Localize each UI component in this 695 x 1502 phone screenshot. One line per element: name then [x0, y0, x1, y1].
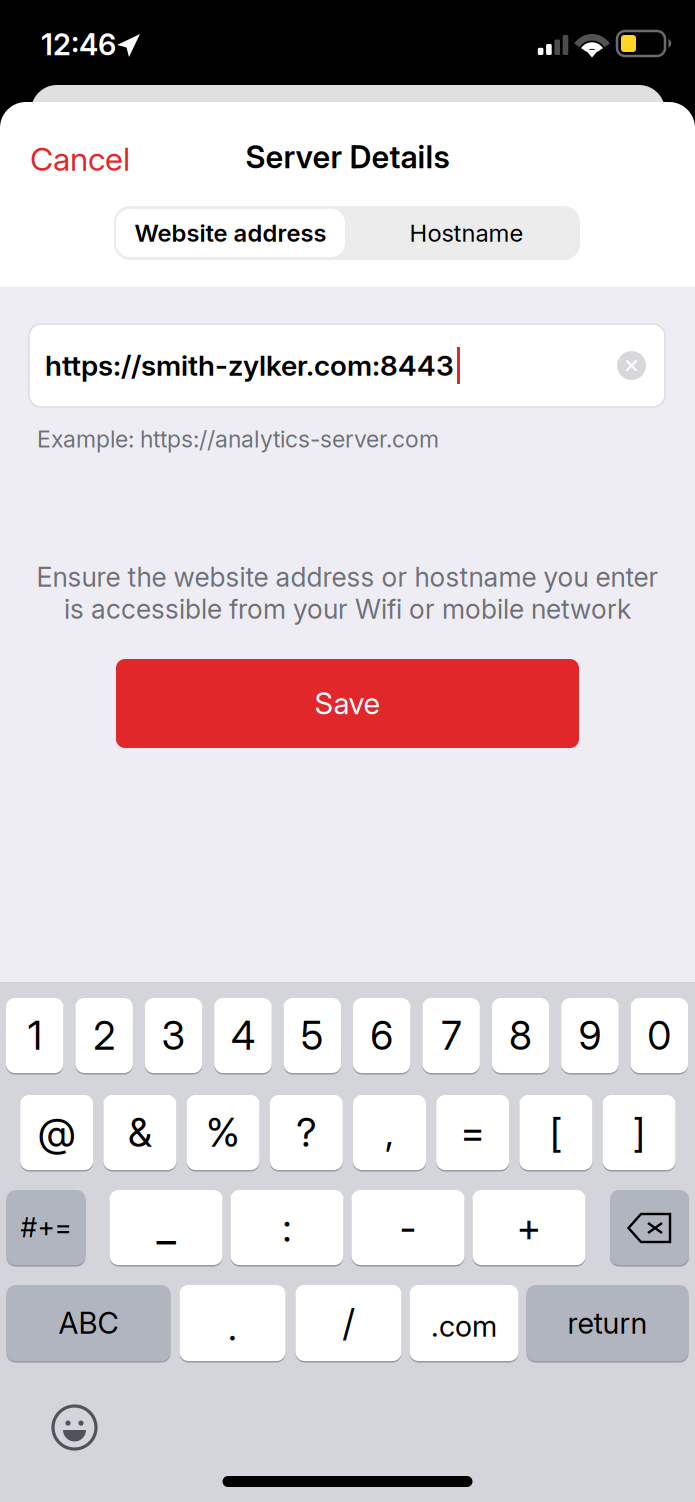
button[interactable]: ]	[603, 1095, 676, 1170]
staticText: Hostname	[409, 218, 523, 247]
button[interactable]: 6	[353, 998, 410, 1073]
staticText: ,	[385, 1108, 394, 1155]
button[interactable]: .	[179, 1285, 285, 1361]
staticText: 0	[647, 1012, 671, 1059]
button[interactable]: &	[103, 1095, 176, 1170]
button[interactable]: 4	[214, 998, 272, 1073]
staticText: Server Details	[245, 138, 449, 176]
staticText: 3	[162, 1012, 186, 1059]
button[interactable]: 9	[561, 998, 619, 1073]
button[interactable]: Save	[116, 659, 579, 748]
staticText: return	[567, 1305, 647, 1341]
staticText: 12:46	[41, 27, 116, 62]
button[interactable]: Clear text	[617, 351, 646, 380]
staticText: ]	[633, 1109, 645, 1156]
staticText: Website address	[134, 218, 326, 247]
button[interactable]: 8	[492, 998, 549, 1073]
button[interactable]: _	[109, 1190, 222, 1265]
staticText: +	[516, 1204, 541, 1251]
button[interactable]: 7	[422, 998, 480, 1073]
button[interactable]: .com	[409, 1285, 518, 1361]
button[interactable]: 5	[284, 998, 341, 1073]
staticText: /	[342, 1300, 354, 1346]
button[interactable]: :	[230, 1190, 343, 1265]
staticText: _	[156, 1200, 175, 1251]
staticText: 7	[441, 1012, 461, 1059]
staticText: 5	[301, 1012, 324, 1059]
button[interactable]: +	[472, 1190, 585, 1265]
button[interactable]: ABC	[6, 1285, 170, 1361]
staticText: Ensure the website address or hostname y…	[36, 561, 658, 593]
button[interactable]: 2	[75, 998, 133, 1073]
staticText: .com	[431, 1308, 497, 1344]
button[interactable]: @	[20, 1095, 93, 1170]
staticText: ABC	[58, 1305, 118, 1341]
staticText: 8	[509, 1012, 532, 1059]
staticText: Cancel	[30, 140, 130, 178]
staticText: [	[550, 1109, 562, 1156]
staticText: #+=	[20, 1211, 71, 1244]
button[interactable]: Hostname	[351, 209, 582, 257]
staticText: -	[399, 1204, 416, 1251]
button[interactable]: Emoji keyboard	[51, 1404, 98, 1451]
staticText: 9	[578, 1012, 601, 1059]
button[interactable]: 1	[6, 998, 63, 1073]
staticText: @	[38, 1109, 76, 1156]
staticText: 6	[370, 1012, 393, 1059]
button[interactable]: 3	[145, 998, 202, 1073]
staticText: =	[460, 1109, 485, 1156]
button[interactable]: ?	[270, 1095, 343, 1170]
button[interactable]: Cancel	[30, 132, 160, 186]
staticText: https://smith-zylker.com:8443	[45, 348, 454, 383]
button[interactable]: return	[526, 1285, 688, 1361]
staticText: &	[128, 1109, 152, 1156]
staticText: 2	[93, 1012, 115, 1059]
button[interactable]: =	[436, 1095, 509, 1170]
button[interactable]: ,	[353, 1095, 426, 1170]
button[interactable]: #+=	[6, 1190, 85, 1265]
staticText: Save	[314, 686, 380, 721]
staticText: 1	[28, 1012, 42, 1059]
staticText: Example: https://analytics-server.com	[37, 425, 439, 453]
button[interactable]: /	[295, 1285, 401, 1361]
button[interactable]: 0	[631, 998, 688, 1073]
staticText: :	[282, 1204, 291, 1251]
button[interactable]: [	[519, 1095, 592, 1170]
staticText: .	[228, 1304, 237, 1350]
staticText: ?	[296, 1109, 316, 1156]
button[interactable]: -	[351, 1190, 464, 1265]
staticText: is accessible from your Wifi or mobile n…	[64, 593, 631, 625]
button[interactable]: Website address	[116, 209, 345, 257]
button[interactable]: Delete	[610, 1190, 689, 1265]
staticText: %	[206, 1109, 240, 1156]
button[interactable]: %	[187, 1095, 260, 1170]
staticText: 4	[231, 1012, 255, 1059]
